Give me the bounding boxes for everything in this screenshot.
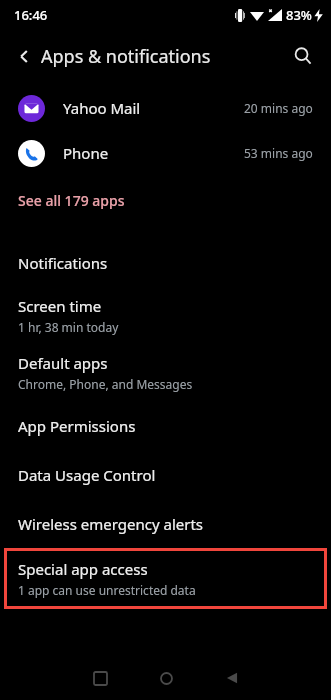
button[interactable]: Data Usage Control bbox=[0, 450, 331, 499]
staticText: See all 179 apps bbox=[18, 191, 125, 210]
button[interactable]: Screen time bbox=[0, 287, 331, 344]
staticText: 1 app can use unrestricted data bbox=[18, 582, 196, 598]
button[interactable]: Yahoo Mail bbox=[0, 88, 331, 128]
staticText: 53 mins ago bbox=[244, 145, 313, 161]
button[interactable]: Recents bbox=[76, 656, 124, 700]
button[interactable]: App Permissions bbox=[0, 401, 331, 450]
staticText: Notifications bbox=[18, 253, 108, 273]
staticText: Special app access bbox=[18, 559, 148, 579]
staticText: Data Usage Control bbox=[18, 465, 156, 485]
button[interactable]: Special app access bbox=[4, 548, 327, 609]
button[interactable]: Phone bbox=[0, 128, 331, 178]
staticText: 16:46 bbox=[14, 6, 48, 24]
staticText: Default apps bbox=[18, 353, 108, 373]
staticText: App Permissions bbox=[18, 416, 136, 436]
staticText: Chrome, Phone, and Messages bbox=[18, 376, 193, 392]
button[interactable]: Back bbox=[208, 656, 256, 700]
button[interactable]: See all 179 apps bbox=[0, 178, 331, 222]
staticText: Apps & notifications bbox=[41, 44, 211, 69]
button[interactable]: Wireless emergency alerts bbox=[0, 499, 331, 548]
staticText: Phone bbox=[63, 143, 109, 163]
button[interactable]: Search bbox=[283, 36, 323, 76]
button[interactable]: Notifications bbox=[0, 238, 331, 287]
staticText: 83% bbox=[286, 6, 312, 24]
button[interactable]: Default apps bbox=[0, 344, 331, 401]
button[interactable]: Home bbox=[142, 656, 190, 700]
staticText: Wireless emergency alerts bbox=[18, 514, 204, 534]
staticText: Yahoo Mail bbox=[63, 98, 141, 118]
staticText: 1 hr, 38 min today bbox=[18, 319, 119, 335]
staticText: 20 mins ago bbox=[244, 100, 313, 116]
staticText: Screen time bbox=[18, 296, 102, 316]
button[interactable]: Back bbox=[4, 36, 44, 76]
